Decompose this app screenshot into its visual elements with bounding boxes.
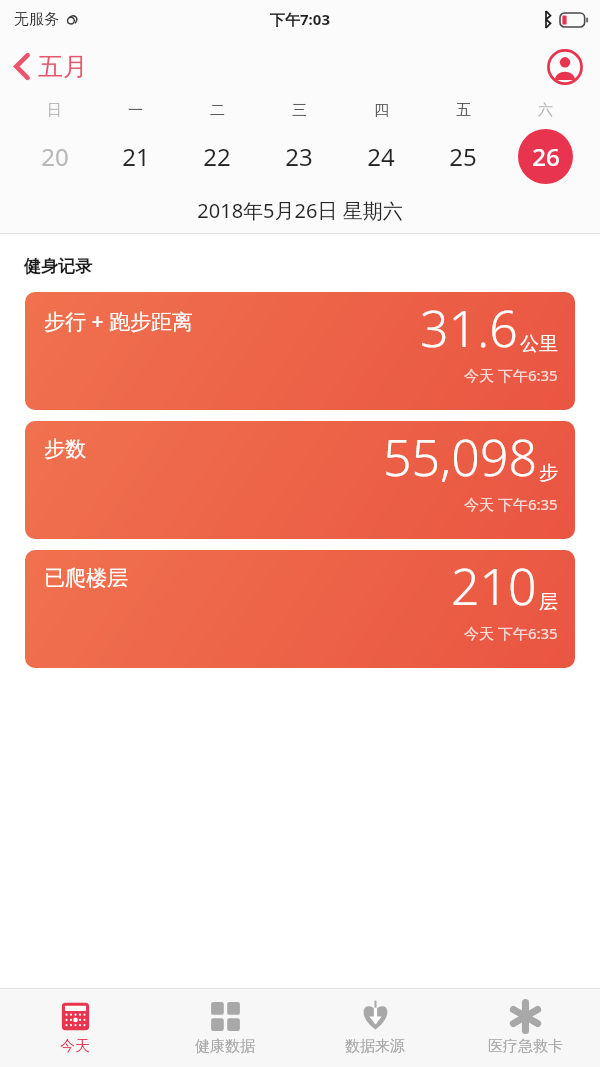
staticText: 今天 下午6:35 [464, 623, 558, 643]
staticText: 今天 下午6:35 [464, 494, 558, 514]
button[interactable]: 21 [95, 125, 176, 187]
button[interactable]: 26 [504, 125, 586, 187]
staticText: 三 [292, 101, 307, 120]
staticText: 31.6 [420, 294, 518, 362]
staticText: 210 [451, 552, 537, 620]
staticText: 20 [41, 140, 69, 173]
button[interactable]: 今天 [0, 989, 150, 1067]
button[interactable]: 25 [422, 125, 504, 187]
staticText: 五 [456, 101, 471, 120]
button[interactable]: 22 [176, 125, 258, 187]
staticText: 无服务 [14, 10, 59, 29]
staticText: 公里 [520, 332, 558, 356]
staticText: 医疗急救卡 [488, 1037, 563, 1056]
staticText: 四 [374, 101, 389, 120]
staticText: 已爬楼层 [44, 565, 128, 591]
staticText: 健身记录 [24, 256, 92, 277]
staticText: 健康数据 [195, 1037, 255, 1056]
button[interactable]: 步数 [25, 421, 575, 539]
button[interactable]: 健康数据 [150, 989, 300, 1067]
button[interactable]: 数据来源 [300, 989, 450, 1067]
staticText: 数据来源 [345, 1037, 405, 1056]
button[interactable]: 23 [258, 125, 340, 187]
staticText: 步行 + 跑步距离 [44, 307, 193, 336]
staticText: 层 [539, 590, 558, 614]
staticText: 今天 [60, 1037, 90, 1056]
staticText: 五月 [38, 51, 88, 82]
button[interactable]: 步行 + 跑步距离 [25, 292, 575, 410]
button[interactable]: 已爬楼层 [25, 550, 575, 668]
staticText: 2018年5月26日 星期六 [197, 197, 403, 224]
staticText: 22 [203, 140, 231, 173]
staticText: 23 [285, 140, 313, 173]
staticText: 21 [122, 140, 150, 173]
staticText: 今天 下午6:35 [464, 365, 558, 385]
staticText: 二 [210, 101, 225, 120]
button[interactable]: 20 [14, 125, 95, 187]
staticText: 步数 [44, 436, 86, 462]
staticText: 步 [539, 461, 558, 485]
staticText: 六 [538, 101, 553, 120]
button[interactable]: 医疗急救卡 [450, 989, 600, 1067]
button[interactable]: Profile [542, 44, 588, 90]
staticText: 24 [367, 140, 395, 173]
button[interactable]: 24 [340, 125, 422, 187]
staticText: 55,098 [383, 423, 537, 491]
staticText: 26 [532, 140, 560, 173]
staticText: 25 [449, 140, 477, 173]
button[interactable]: 五月 [0, 45, 102, 88]
staticText: 日 [47, 101, 62, 120]
staticText: 下午7:03 [270, 9, 330, 29]
staticText: 一 [128, 101, 143, 120]
